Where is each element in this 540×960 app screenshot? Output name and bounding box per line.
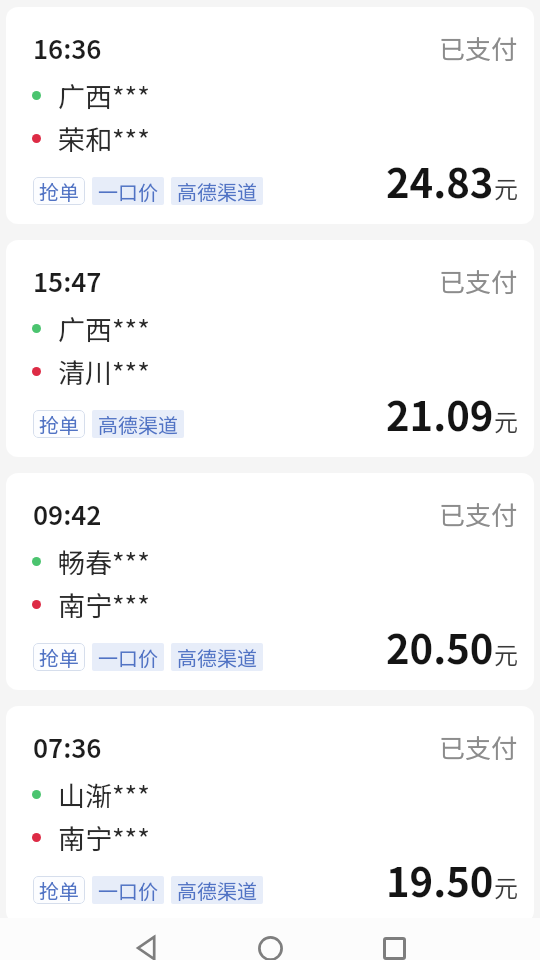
staticText: 元 [494, 869, 518, 904]
staticText: 抢单 [39, 643, 79, 671]
staticText: 07:36 [33, 728, 102, 766]
staticText: 山渐*** [58, 775, 150, 814]
staticText: 20.50 [386, 618, 494, 676]
staticText: 高德渠道 [177, 643, 257, 671]
button[interactable]: Back [125, 927, 169, 960]
staticText: 高德渠道 [98, 410, 178, 438]
staticText: 15:47 [33, 262, 102, 300]
button[interactable]: 09:42 [6, 473, 534, 690]
staticText: 抢单 [39, 410, 79, 438]
staticText: 高德渠道 [177, 876, 257, 904]
staticText: 元 [494, 636, 518, 671]
staticText: 元 [494, 403, 518, 438]
staticText: 抢单 [39, 876, 79, 904]
button[interactable]: Recents [372, 927, 416, 960]
button[interactable]: 16:36 [6, 7, 534, 224]
staticText: 已支付 [439, 495, 518, 533]
staticText: 南宁*** [58, 585, 150, 624]
staticText: 21.09 [386, 385, 494, 443]
staticText: 清川*** [58, 352, 150, 391]
staticText: 广西*** [58, 76, 150, 115]
staticText: 南宁*** [58, 818, 150, 857]
staticText: 已支付 [439, 728, 518, 766]
button[interactable]: Home [248, 927, 292, 960]
staticText: 抢单 [39, 177, 79, 205]
staticText: 16:36 [33, 29, 102, 67]
staticText: 24.83 [386, 152, 494, 210]
staticText: 已支付 [439, 262, 518, 300]
button[interactable]: 15:47 [6, 240, 534, 457]
staticText: 荣和*** [58, 119, 150, 158]
staticText: 高德渠道 [177, 177, 257, 205]
button[interactable]: 07:36 [6, 706, 534, 923]
staticText: 广西*** [58, 309, 150, 348]
staticText: 元 [494, 170, 518, 205]
staticText: 09:42 [33, 495, 102, 533]
staticText: 19.50 [386, 851, 494, 909]
staticText: 已支付 [439, 29, 518, 67]
staticText: 畅春*** [58, 542, 150, 581]
staticText: 一口价 [98, 643, 158, 671]
staticText: 一口价 [98, 177, 158, 205]
staticText: 一口价 [98, 876, 158, 904]
